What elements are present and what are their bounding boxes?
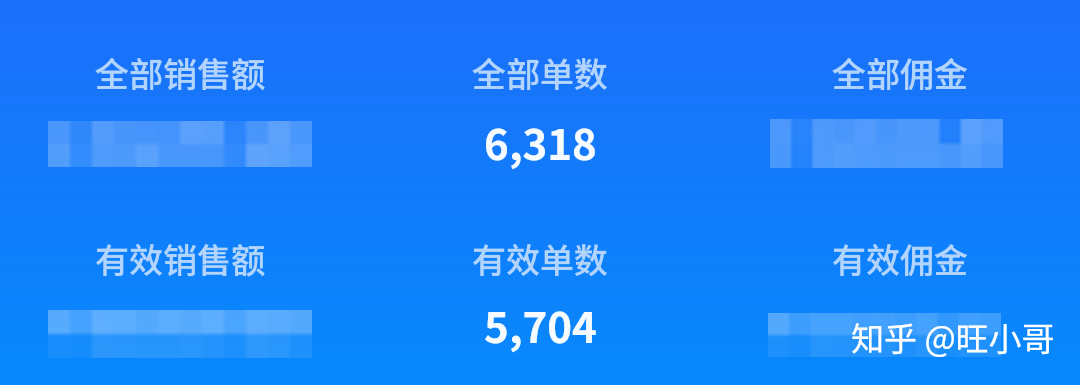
button[interactable]: 有效佣金 bbox=[720, 192, 1080, 385]
staticText: 有效销售额 bbox=[95, 234, 265, 283]
staticText: 有效单数 bbox=[472, 234, 608, 283]
staticText: 5,704 bbox=[484, 294, 597, 355]
button[interactable]: 有效销售额 bbox=[0, 192, 360, 385]
staticText: 知乎 @旺小哥 bbox=[851, 313, 1055, 361]
staticText: 全部单数 bbox=[472, 48, 608, 97]
button[interactable]: 有效单数 bbox=[360, 192, 720, 385]
staticText: 有效佣金 bbox=[832, 234, 968, 283]
staticText: 全部佣金 bbox=[832, 48, 968, 97]
button[interactable]: 全部单数 bbox=[360, 0, 720, 192]
staticText: 全部销售额 bbox=[95, 48, 265, 97]
button[interactable]: 全部佣金 bbox=[720, 0, 1080, 192]
staticText: 6,318 bbox=[484, 111, 597, 172]
button[interactable]: 全部销售额 bbox=[0, 0, 360, 192]
